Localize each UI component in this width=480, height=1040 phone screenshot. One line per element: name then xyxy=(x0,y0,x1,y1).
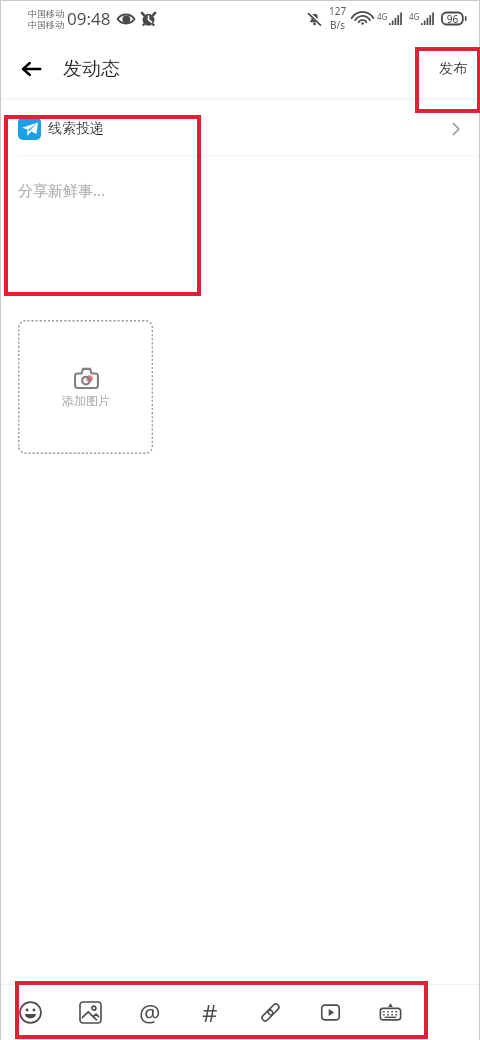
staticText: 发动态 xyxy=(63,57,120,81)
button[interactable]: Video xyxy=(300,985,360,1040)
button[interactable]: Keyboard xyxy=(360,985,420,1040)
button[interactable]: Image xyxy=(60,985,120,1040)
button[interactable]: Topic xyxy=(180,985,240,1040)
button[interactable]: 发布 xyxy=(431,52,475,86)
staticText: # xyxy=(202,996,218,1029)
staticText: 中国移动 xyxy=(28,19,64,30)
staticText: 127 xyxy=(329,4,347,18)
button[interactable]: Back xyxy=(0,39,62,99)
button[interactable]: 线索投递 xyxy=(0,102,480,156)
button[interactable]: Link xyxy=(240,985,300,1040)
staticText: B/s xyxy=(330,18,346,32)
staticText: 09:48 xyxy=(67,7,111,30)
staticText: 96 xyxy=(441,12,464,26)
staticText: 分享新鲜事... xyxy=(18,180,106,200)
staticText: 发布 xyxy=(439,60,467,78)
staticText: 线索投递 xyxy=(48,120,104,138)
button[interactable]: Emoji xyxy=(0,985,60,1040)
button[interactable]: Mention xyxy=(120,985,180,1040)
button[interactable]: 添加图片 xyxy=(18,320,153,454)
staticText: 中国移动 xyxy=(28,8,64,19)
staticText: @ xyxy=(139,996,161,1029)
staticText: 4G xyxy=(409,11,420,22)
staticText: 添加图片 xyxy=(62,393,110,408)
staticText: 4G xyxy=(377,11,388,22)
